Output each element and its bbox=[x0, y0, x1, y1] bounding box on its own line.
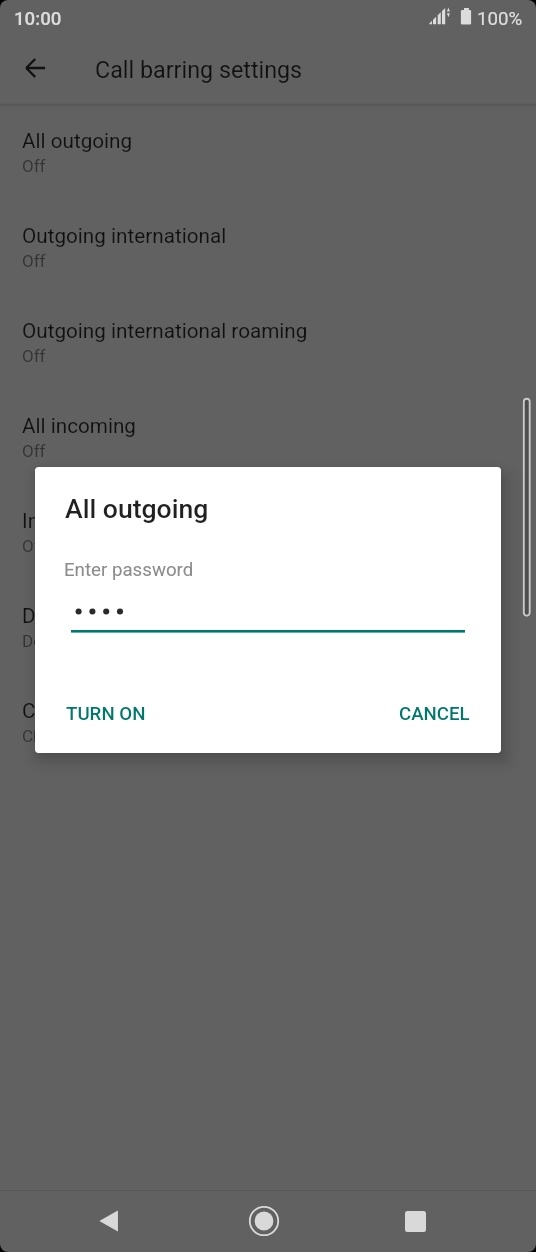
staticText: Change call barring password bbox=[22, 726, 247, 746]
staticText: CANCEL bbox=[399, 703, 470, 725]
staticText: All outgoing bbox=[22, 129, 133, 153]
staticText: Outgoing international bbox=[22, 224, 227, 248]
staticText: All outgoing bbox=[65, 493, 209, 524]
staticText: 10:00 bbox=[14, 8, 62, 30]
staticText: Incoming when roaming bbox=[22, 509, 244, 533]
staticText: Off bbox=[22, 536, 46, 556]
button[interactable]: CANCEL bbox=[385, 691, 484, 737]
button[interactable]: Incoming when roaming bbox=[0, 498, 536, 593]
staticText: Off bbox=[22, 441, 46, 461]
staticText: All incoming bbox=[22, 414, 136, 438]
staticText: Off bbox=[22, 251, 46, 271]
button[interactable]: Change barring password bbox=[0, 688, 536, 783]
staticText: Deactivate all bbox=[22, 604, 146, 628]
staticText: Off bbox=[22, 156, 46, 176]
button[interactable]: Outgoing international bbox=[0, 213, 536, 308]
button[interactable]: Deactivate all bbox=[0, 593, 536, 688]
staticText: Enter password bbox=[64, 559, 194, 581]
button[interactable]: Navigate up bbox=[12, 44, 60, 92]
button[interactable]: Home bbox=[236, 1193, 292, 1249]
staticText: Call barring settings bbox=[95, 56, 303, 83]
button[interactable]: All incoming bbox=[0, 403, 536, 498]
button[interactable]: Outgoing international roaming bbox=[0, 308, 536, 403]
staticText: Off bbox=[22, 346, 46, 366]
button[interactable]: All outgoing bbox=[0, 118, 536, 213]
staticText: Change barring password bbox=[22, 699, 258, 723]
staticText: Deactivate all call barring settings bbox=[22, 631, 277, 651]
button[interactable]: TURN ON bbox=[52, 691, 160, 737]
staticText: 100% bbox=[477, 8, 523, 30]
staticText: TURN ON bbox=[66, 703, 146, 725]
button[interactable]: Back bbox=[82, 1193, 138, 1249]
button[interactable]: Recent apps bbox=[387, 1193, 443, 1249]
staticText: Outgoing international roaming bbox=[22, 319, 308, 343]
